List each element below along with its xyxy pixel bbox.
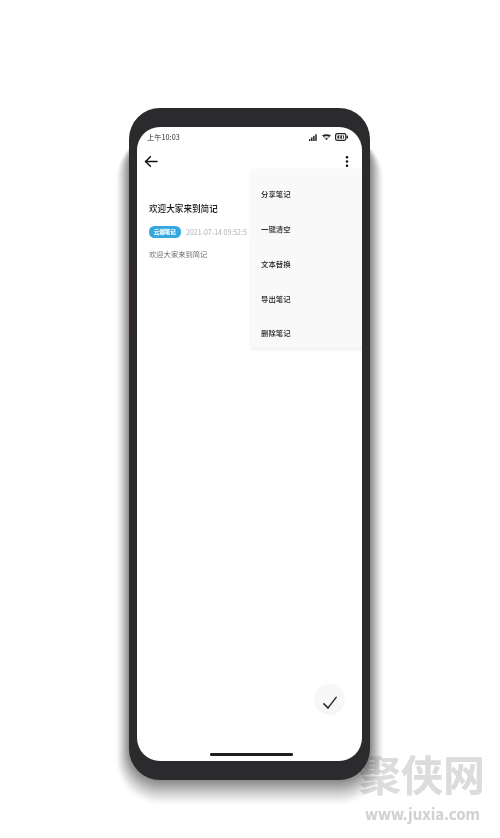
staticText: 欢迎大家来到简记 [149,202,218,214]
button[interactable]: Save note [315,684,344,713]
button[interactable]: 导出笔记 [251,281,362,316]
button[interactable]: 分享笔记 [251,176,362,211]
staticText: 文本替换 [261,258,291,269]
staticText: 导出笔记 [261,293,291,304]
staticText: 删除笔记 [261,327,291,338]
staticText: 一键清空 [261,223,291,234]
staticText: 分享笔记 [261,188,291,199]
staticText: 欢迎大家来到简记 [149,249,208,260]
button[interactable]: More options [335,149,359,173]
button[interactable]: 文本替换 [251,246,362,281]
staticText: 云端笔记 [154,228,176,236]
staticText: 聚侠网 [359,742,486,803]
button[interactable]: 一键清空 [251,211,362,246]
staticText: 2021-07-14 09:52:5 [186,227,247,237]
staticText: 上午10:03 [147,132,180,142]
button[interactable]: Back [139,149,163,173]
button[interactable]: 删除笔记 [251,316,362,348]
staticText: www.juxia.com [365,803,481,825]
button[interactable]: 云端笔记 [149,226,181,238]
